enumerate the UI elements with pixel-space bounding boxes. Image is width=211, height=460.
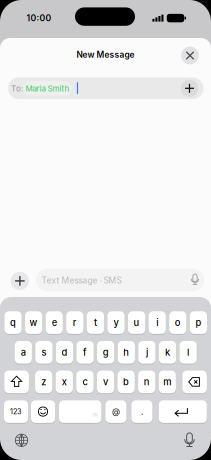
staticText: k	[165, 347, 170, 358]
button[interactable]: t	[87, 311, 104, 334]
staticText: g	[103, 347, 109, 358]
staticText: f	[83, 347, 87, 358]
staticText: 10:00	[26, 13, 51, 23]
button[interactable]: @	[105, 400, 126, 423]
staticText: @	[112, 407, 120, 417]
button[interactable]: z	[35, 371, 52, 393]
staticText: u	[134, 317, 140, 328]
button[interactable]: Next Keyboard	[14, 433, 28, 447]
button[interactable]: u	[128, 311, 145, 334]
staticText: Maria Smith	[25, 84, 69, 93]
button[interactable]: Dictate	[186, 271, 204, 289]
staticText: q	[10, 317, 16, 328]
staticText: j	[146, 347, 148, 358]
staticText: p	[195, 317, 201, 328]
button[interactable]: g	[97, 341, 114, 364]
button[interactable]: a	[15, 341, 32, 364]
staticText: m	[163, 376, 171, 388]
staticText: w	[30, 317, 38, 328]
button[interactable]: k	[159, 341, 176, 364]
button[interactable]: i	[149, 311, 166, 334]
staticText: z	[41, 376, 46, 388]
button[interactable]: y	[107, 311, 125, 334]
staticText: y	[113, 317, 118, 328]
button[interactable]: Shift	[4, 371, 29, 393]
button[interactable]: 123	[4, 400, 28, 423]
button[interactable]: .	[131, 400, 152, 423]
button[interactable]: e	[46, 311, 63, 334]
staticText: o	[175, 317, 181, 328]
staticText: 123	[10, 407, 22, 416]
staticText: a	[21, 347, 26, 358]
staticText: d	[61, 347, 67, 358]
button[interactable]: p	[190, 311, 207, 334]
staticText: e	[52, 317, 57, 328]
button[interactable]: m	[159, 371, 176, 393]
staticText: l	[187, 347, 189, 358]
staticText: r	[73, 317, 77, 328]
button[interactable]: space	[59, 400, 101, 423]
button[interactable]: q	[4, 311, 22, 334]
button[interactable]: b	[117, 371, 135, 393]
button[interactable]: s	[35, 341, 52, 364]
staticText: s	[41, 347, 46, 358]
button[interactable]: Close	[181, 47, 199, 64]
button[interactable]: v	[97, 371, 114, 393]
button[interactable]: x	[56, 371, 73, 393]
staticText: New Message	[76, 50, 134, 60]
staticText: b	[123, 376, 129, 388]
staticText: c	[82, 376, 87, 388]
staticText: .	[141, 406, 143, 417]
button[interactable]: Delete	[182, 371, 207, 393]
staticText: n	[144, 376, 150, 388]
button[interactable]: Return	[159, 400, 207, 423]
staticText: i	[156, 317, 158, 328]
button[interactable]: Apps	[11, 272, 29, 290]
staticText: To:	[11, 84, 23, 93]
button[interactable]: j	[138, 341, 155, 364]
staticText: Text Message · SMS	[41, 275, 121, 285]
button[interactable]: h	[118, 341, 135, 364]
button[interactable]: d	[56, 341, 73, 364]
button[interactable]: w	[25, 311, 42, 334]
button[interactable]: c	[76, 371, 93, 393]
staticText: t	[94, 317, 97, 328]
button[interactable]: n	[138, 371, 155, 393]
button[interactable]: f	[76, 341, 94, 364]
staticText: h	[123, 347, 129, 358]
button[interactable]: o	[169, 311, 186, 334]
button[interactable]: Add Contact	[181, 80, 198, 97]
staticText: EN	[93, 412, 98, 417]
button[interactable]: Emoji	[31, 400, 55, 423]
button[interactable]: r	[66, 311, 83, 334]
button[interactable]: Dictation	[180, 432, 198, 450]
staticText: v	[103, 376, 108, 388]
staticText: x	[62, 376, 67, 388]
button[interactable]: l	[179, 341, 197, 364]
